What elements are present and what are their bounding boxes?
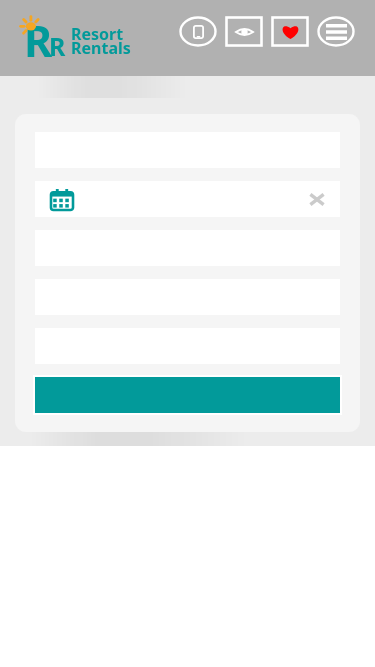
button[interactable]: View — [225, 16, 263, 47]
button[interactable]: Search — [33, 375, 342, 415]
staticText: Resort — [71, 23, 124, 45]
button[interactable]: Pick date — [35, 181, 340, 217]
button[interactable]: Pick date — [47, 182, 77, 216]
button[interactable]: Clear date — [304, 182, 330, 216]
staticText: Rentals — [71, 37, 131, 59]
staticText: R — [24, 11, 53, 67]
button[interactable]: Menu — [317, 16, 355, 47]
button[interactable]: Call us — [179, 16, 217, 47]
button[interactable]: Favourites — [271, 16, 309, 47]
staticText: R — [49, 29, 66, 63]
